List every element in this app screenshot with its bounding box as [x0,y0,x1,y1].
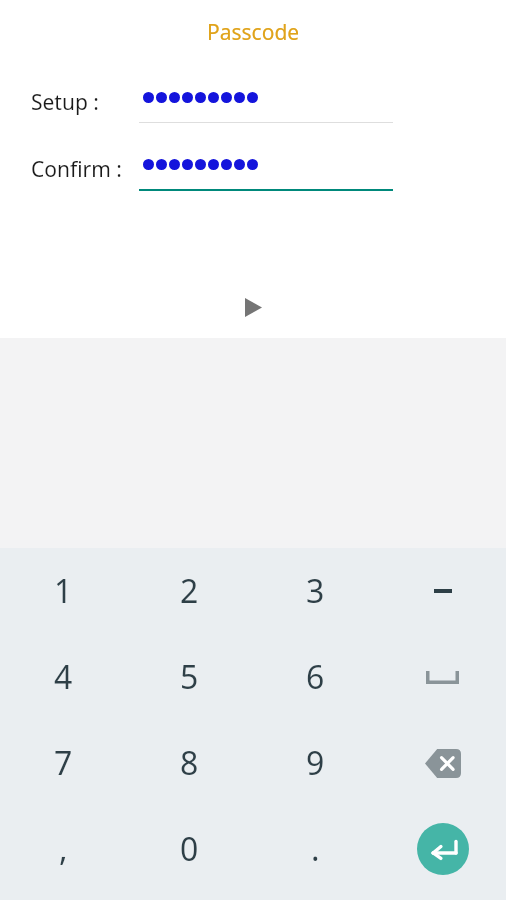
button[interactable]: Backspace [379,720,506,806]
staticText: 2 [180,569,199,613]
staticText: 8 [180,741,199,785]
button[interactable]: 2 [126,548,252,634]
staticText: 5 [180,655,199,699]
button[interactable]: Enter [379,806,506,892]
button[interactable]: 9 [252,720,379,806]
staticText: 0 [180,827,199,871]
button[interactable]: 1 [0,548,126,634]
button[interactable]: 5 [126,634,252,720]
button[interactable]: . [252,806,379,892]
staticText: Passcode [207,18,300,47]
button[interactable]: 7 [0,720,126,806]
staticText: Confirm : [31,155,122,184]
button[interactable]: Submit passcode [227,281,279,333]
staticText: 4 [54,655,73,699]
staticText: 7 [54,741,73,785]
staticText: . [311,827,320,871]
button[interactable]: Space [379,634,506,720]
button[interactable]: , [0,806,126,892]
button[interactable]: Setup : [139,84,393,126]
button[interactable]: Confirm : [139,151,393,193]
button[interactable]: 0 [126,806,252,892]
button[interactable]: 4 [0,634,126,720]
staticText: Setup : [31,88,99,117]
staticText: 3 [306,569,325,613]
button[interactable]: 3 [252,548,379,634]
button[interactable]: 8 [126,720,252,806]
button[interactable]: 6 [252,634,379,720]
staticText: 9 [306,741,325,785]
staticText: 1 [54,569,73,613]
button[interactable]: Minus [379,548,506,634]
staticText: 6 [306,655,325,699]
staticText: , [59,827,68,871]
